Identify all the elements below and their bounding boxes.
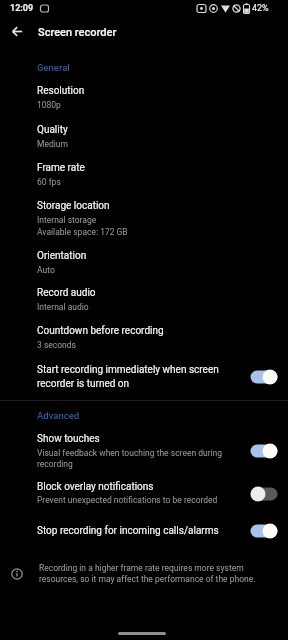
staticText: Available space: 172 GB xyxy=(37,227,128,237)
staticText: Internal storage xyxy=(37,215,97,225)
staticText: General xyxy=(37,62,70,73)
staticText: Screen recorder xyxy=(38,26,117,39)
staticText: Advanced xyxy=(37,410,80,421)
staticText: Storage location xyxy=(37,200,110,212)
staticText: recording xyxy=(37,459,73,469)
staticText: Auto xyxy=(37,265,55,275)
staticText: Visual feedback when touching the screen… xyxy=(37,448,223,458)
staticText: 60 fps xyxy=(37,177,61,187)
staticText: 3 seconds xyxy=(37,340,76,350)
staticText: Orientation xyxy=(37,250,87,262)
staticText: Countdown before recording xyxy=(37,325,164,337)
staticText: 42% xyxy=(252,3,269,14)
staticText: 1080p xyxy=(37,100,61,110)
staticText: recorder is turned on xyxy=(37,378,130,390)
staticText: Quality xyxy=(37,124,68,136)
staticText: Internal audio xyxy=(37,302,89,312)
staticText: Frame rate xyxy=(37,162,85,174)
staticText: Medium xyxy=(37,139,68,149)
staticText: Block overlay notifications xyxy=(37,481,154,493)
staticText: Show touches xyxy=(37,433,100,445)
staticText: Prevent unexpected notifications to be r… xyxy=(37,495,218,505)
staticText: Stop recording for incoming calls/alarms xyxy=(37,525,219,537)
staticText: resources, so it may affect the performa… xyxy=(39,574,256,584)
staticText: Resolution xyxy=(37,85,85,97)
staticText: Start recording immediately when screen xyxy=(37,364,219,376)
staticText: Recording in a higher frame rate require… xyxy=(39,563,244,573)
staticText: Record audio xyxy=(37,287,96,299)
staticText: 12:09 xyxy=(10,3,34,14)
